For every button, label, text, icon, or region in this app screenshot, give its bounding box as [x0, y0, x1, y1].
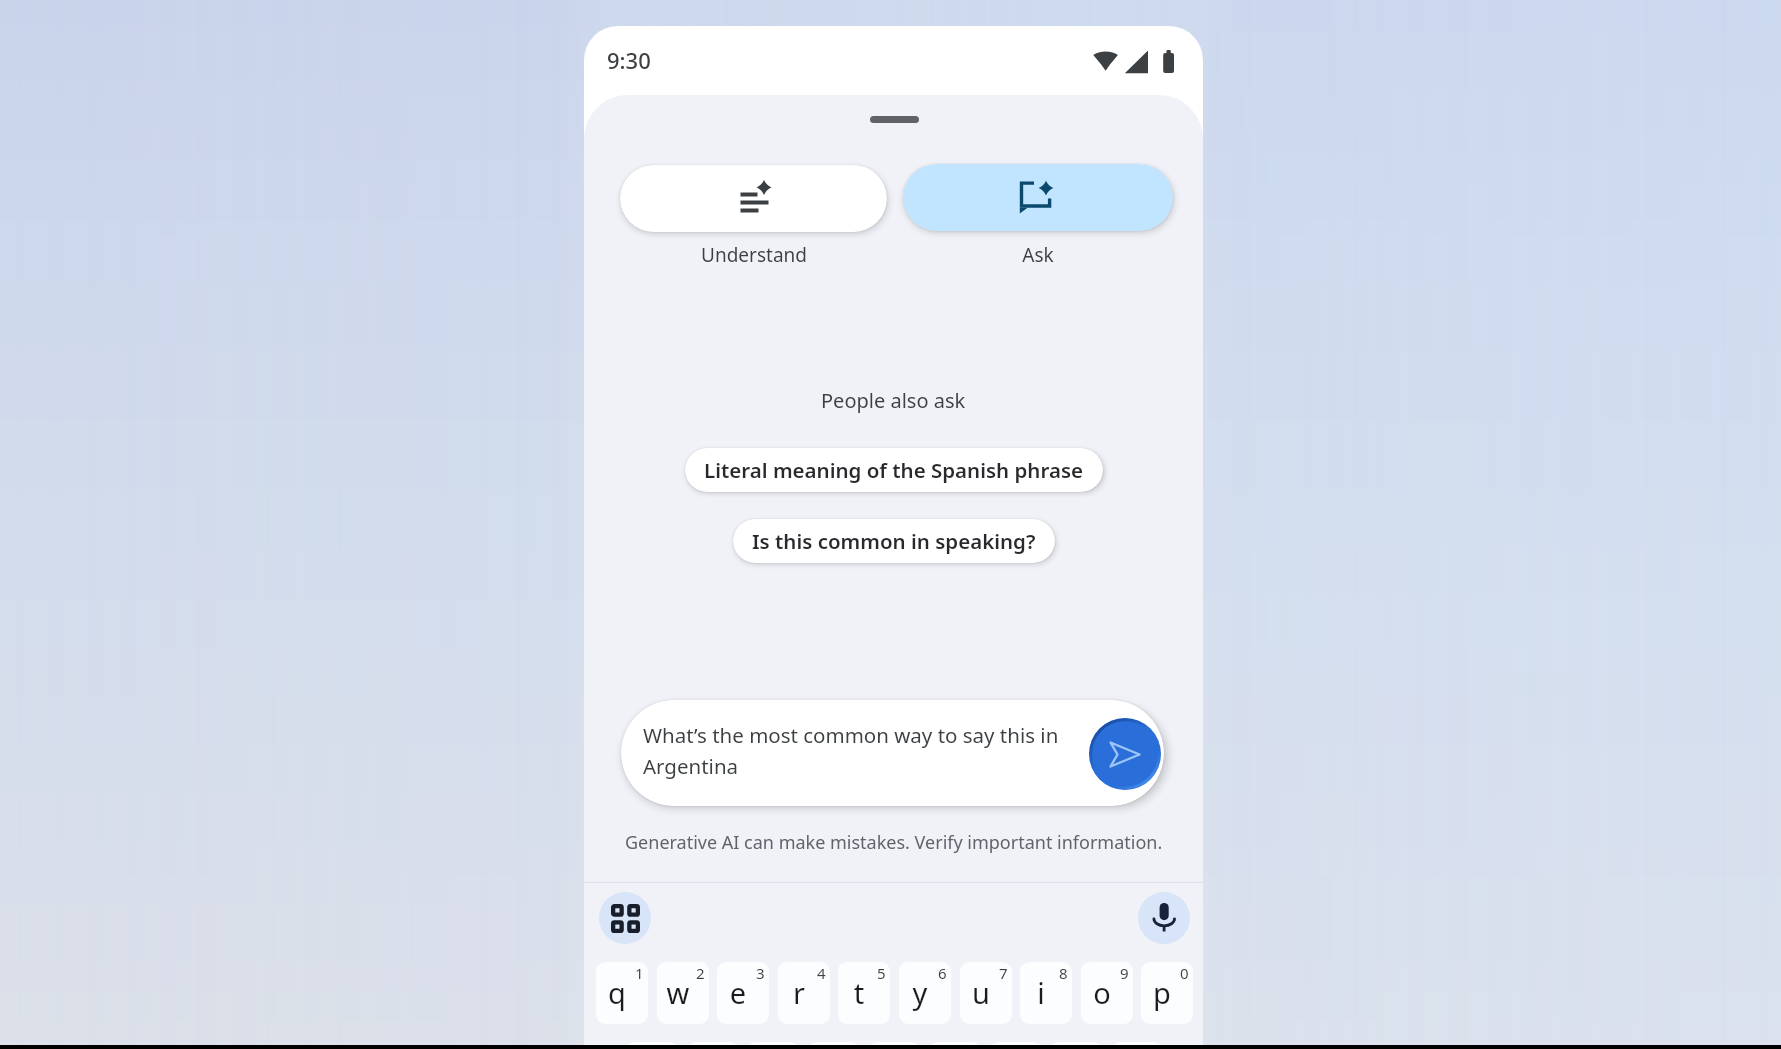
button[interactable]: o	[1081, 962, 1133, 1024]
staticText: p	[1141, 973, 1188, 1012]
button[interactable]: Understand	[620, 165, 887, 232]
staticText: 6	[938, 963, 947, 983]
button[interactable]: Switch keyboard layout	[599, 892, 651, 944]
staticText: o	[1081, 973, 1128, 1012]
button[interactable]: Send	[1089, 718, 1161, 790]
staticText: e	[717, 973, 764, 1012]
staticText: 9:30	[607, 45, 651, 75]
button[interactable]: p	[1141, 962, 1193, 1024]
staticText: Generative AI can make mistakes. Verify …	[625, 830, 1163, 855]
staticText: q	[596, 973, 643, 1012]
staticText: 7	[999, 963, 1008, 983]
button[interactable]: w	[657, 962, 709, 1024]
button[interactable]: t	[838, 962, 890, 1024]
button[interactable]: Is this common in speaking?	[733, 519, 1055, 563]
staticText: What’s the most common way to say this i…	[643, 721, 1067, 780]
staticText: u	[960, 973, 1007, 1012]
button[interactable]: i	[1020, 962, 1072, 1024]
staticText: 3	[756, 963, 765, 983]
button[interactable]: What’s the most common way to say this i…	[621, 700, 1164, 806]
staticText: 0	[1180, 963, 1189, 983]
staticText: t	[838, 973, 885, 1012]
staticText: 9	[1120, 963, 1129, 983]
staticText: 2	[696, 963, 705, 983]
button[interactable]: Ask	[903, 164, 1173, 231]
button[interactable]: u	[960, 962, 1012, 1024]
staticText: 4	[817, 963, 826, 983]
button[interactable]: r	[778, 962, 830, 1024]
button[interactable]: y	[899, 962, 951, 1024]
staticText: Ask	[1022, 242, 1054, 268]
staticText: People also ask	[821, 387, 966, 414]
button[interactable]: Voice input	[1138, 892, 1190, 944]
staticText: i	[1020, 973, 1067, 1012]
staticText: 1	[635, 963, 644, 983]
staticText: Literal meaning of the Spanish phrase	[704, 456, 1084, 484]
staticText: 5	[877, 963, 886, 983]
button[interactable]: e	[717, 962, 769, 1024]
staticText: y	[899, 973, 946, 1012]
staticText: Understand	[701, 242, 807, 268]
button[interactable]: q	[596, 962, 648, 1024]
staticText: w	[657, 973, 704, 1012]
staticText: 8	[1059, 963, 1068, 983]
staticText: r	[778, 973, 825, 1012]
staticText: Is this common in speaking?	[752, 527, 1036, 555]
button[interactable]: Literal meaning of the Spanish phrase	[685, 448, 1103, 492]
